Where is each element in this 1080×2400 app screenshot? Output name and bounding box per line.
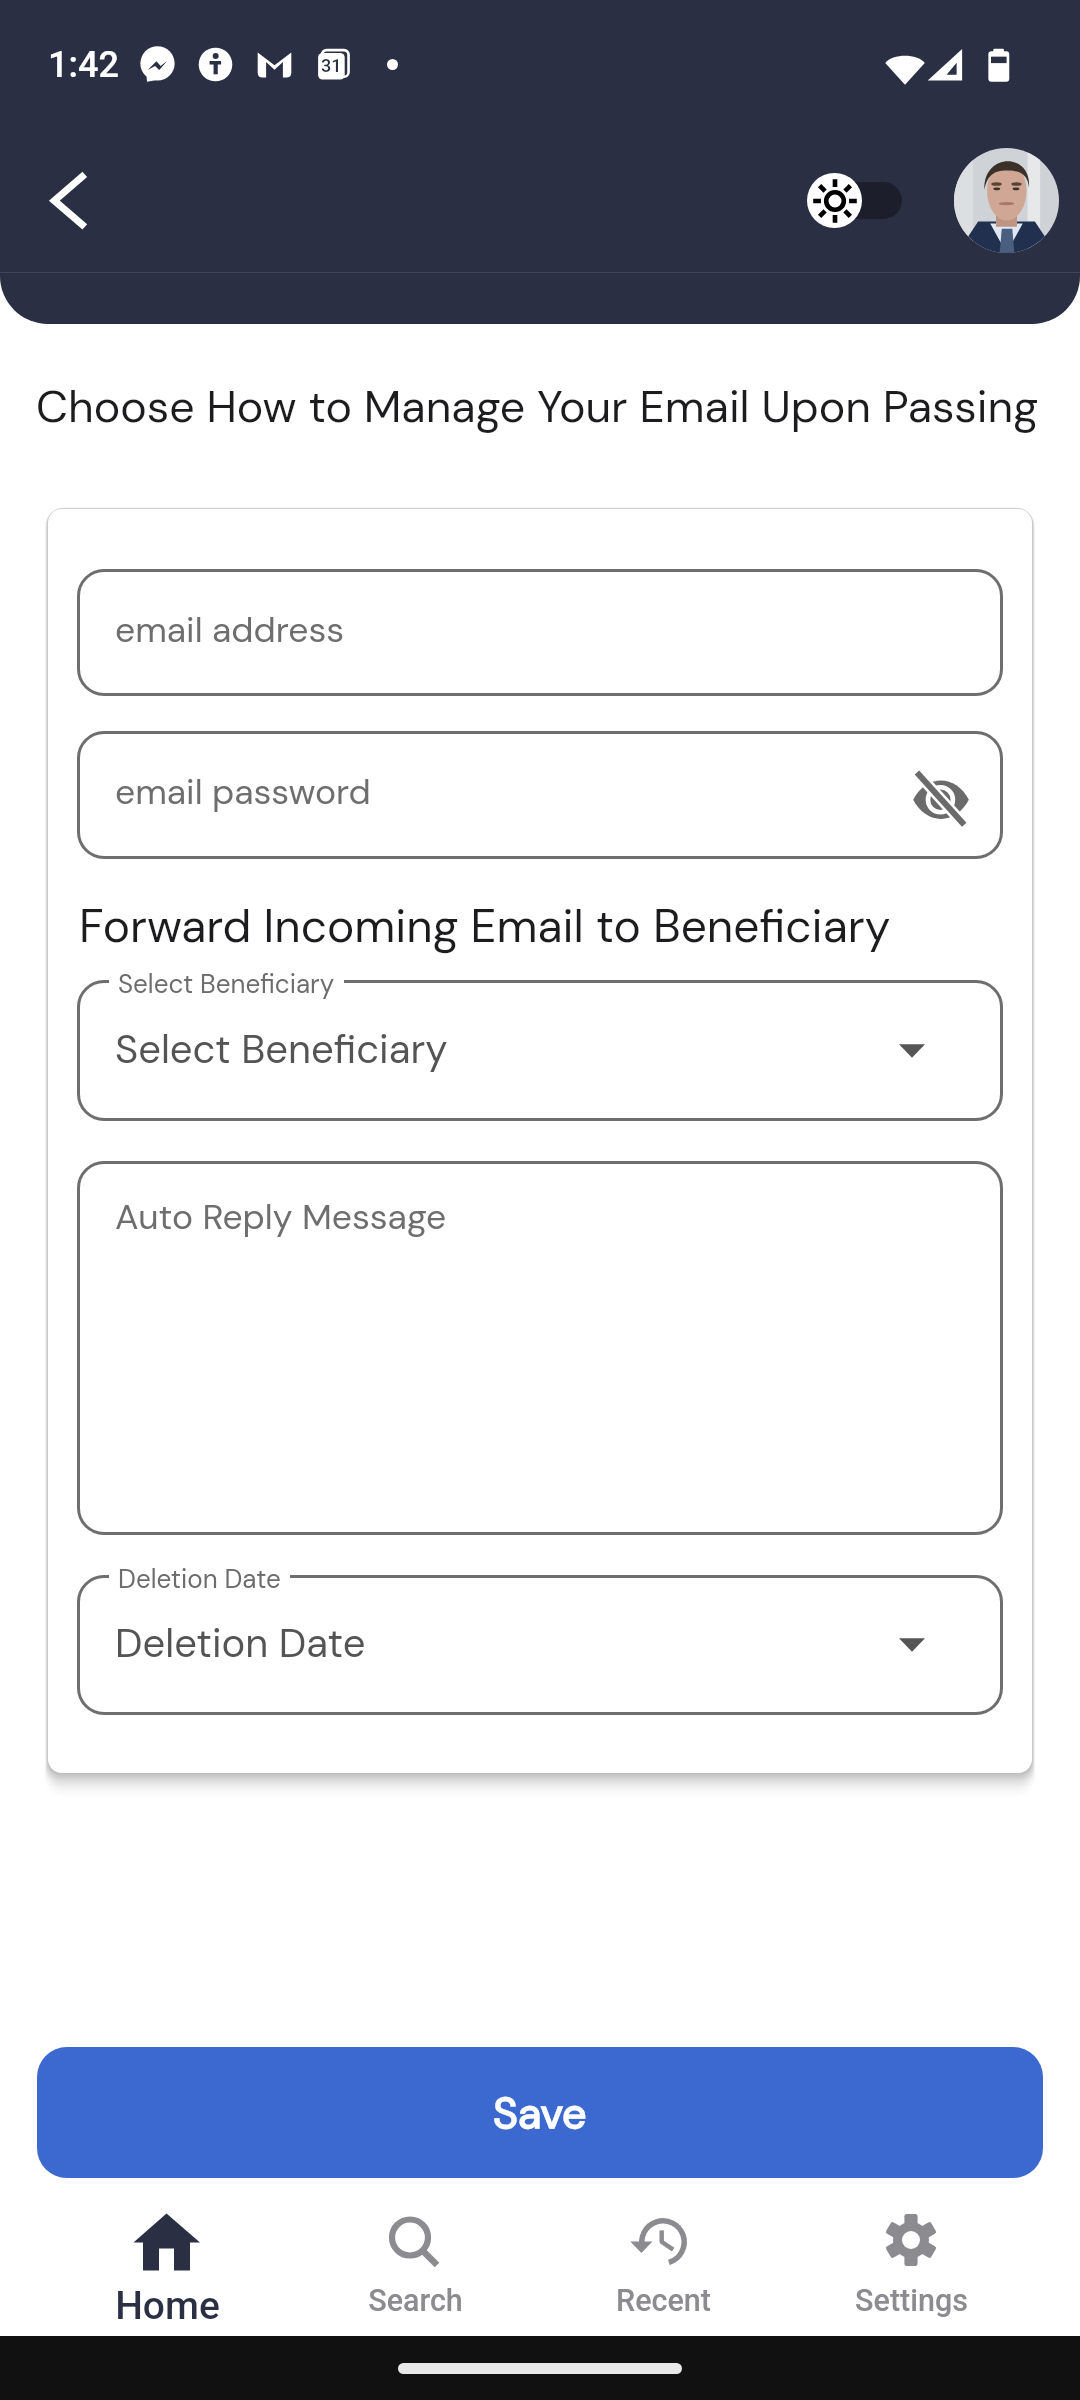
staticText: Choose How to Manage Your Email Upon Pas… [36, 378, 1039, 436]
staticText: Save [493, 2085, 587, 2141]
button[interactable]: email password [77, 731, 1003, 859]
staticText: Select Beneficiary [115, 1023, 448, 1075]
staticText: Deletion Date [118, 1562, 281, 1596]
button[interactable]: Back [26, 154, 118, 246]
button[interactable]: Search [291, 2196, 539, 2336]
staticText: email password [115, 769, 371, 815]
button[interactable]: Auto Reply Message [77, 1161, 1003, 1535]
button[interactable]: Home [43, 2196, 291, 2336]
button[interactable]: Settings [787, 2196, 1035, 2336]
staticText: Forward Incoming Email to Beneficiary [79, 896, 891, 956]
button[interactable]: Recent [539, 2196, 787, 2336]
button[interactable]: Deletion Date [77, 1575, 1003, 1715]
button[interactable]: email address [77, 569, 1003, 696]
staticText: Deletion Date [115, 1617, 366, 1669]
staticText: 31 [321, 55, 342, 76]
button[interactable]: Save [37, 2047, 1043, 2178]
staticText: Home [115, 2283, 220, 2329]
staticText: Search [368, 2283, 463, 2319]
staticText: Select Beneficiary [118, 967, 335, 1001]
staticText: 1:42 [48, 44, 119, 86]
staticText: Settings [855, 2283, 968, 2319]
button[interactable]: Profile [954, 148, 1059, 253]
staticText: Recent [616, 2283, 711, 2319]
staticText: Auto Reply Message [115, 1194, 447, 1240]
staticText: email address [115, 607, 345, 653]
button[interactable]: Show password [903, 757, 979, 833]
button[interactable]: Select Beneficiary [77, 980, 1003, 1121]
button[interactable]: Toggle dark mode [809, 172, 902, 228]
